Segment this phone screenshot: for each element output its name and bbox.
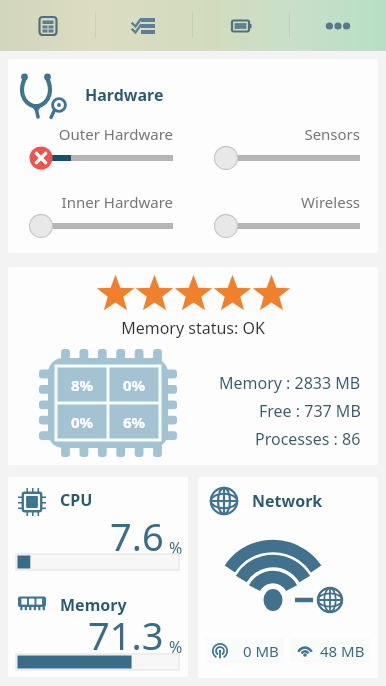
staticText: Memory : 2833 MB [219,372,361,394]
staticText: Free : 737 MB [259,400,361,422]
staticText: 0% [123,375,146,395]
staticText: Memory status: OK [8,317,378,339]
staticText: Processes : 86 [255,428,361,450]
staticText: Network [252,490,323,512]
button[interactable]: 48 MB [290,638,370,663]
button[interactable]: 0 MB [205,638,284,663]
staticText: 6% [123,412,146,432]
staticText: Wireless [226,192,360,212]
button[interactable]: Inner Hardware [41,192,173,238]
button[interactable]: More options [290,0,386,51]
staticText: CPU [60,489,93,511]
staticText: Hardware [85,84,164,106]
staticText: 8% [71,375,94,395]
staticText: 48 MB [320,641,365,661]
staticText: 0% [71,412,94,432]
button[interactable]: Tasks [96,0,192,51]
staticText: 0 MB [243,641,279,661]
button[interactable]: Battery [193,0,289,51]
staticText: Outer Hardware [41,124,173,144]
staticText: 7.6 [110,510,164,562]
staticText: Inner Hardware [41,192,173,212]
staticText: 71.3 [88,609,164,661]
button[interactable]: Sensors [226,124,360,170]
staticText: Memory [60,594,127,616]
staticText: % [169,537,183,559]
button[interactable]: Dashboard [0,0,95,51]
staticText: Sensors [226,124,360,144]
button[interactable]: Outer Hardware [41,124,173,170]
staticText: % [169,636,183,658]
button[interactable]: Wireless [226,192,360,238]
